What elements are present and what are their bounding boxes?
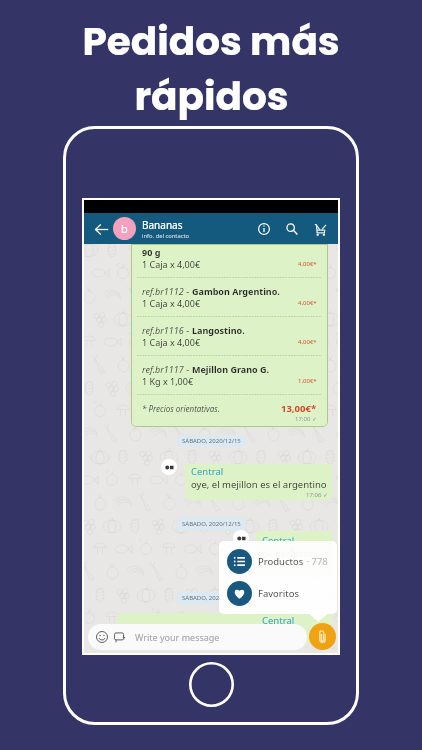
- staticText: Central: [262, 534, 295, 547]
- staticText: 17:06 ✓: [306, 491, 328, 499]
- button[interactable]: Home: [189, 662, 234, 707]
- staticText: -: [184, 285, 192, 297]
- button[interactable]: Productos: [227, 549, 337, 574]
- staticText: 1 Caja x 4,00€: [142, 297, 201, 309]
- staticText: 13,00€*: [281, 402, 317, 415]
- staticText: ref.br1116: [142, 324, 184, 336]
- button[interactable]: Info: [252, 217, 276, 241]
- staticText: Write your message: [135, 631, 220, 643]
- staticText: Pedidos más: [82, 14, 340, 69]
- staticText: 1 Kg x 1,00€: [142, 375, 194, 387]
- staticText: Bananas: [142, 218, 183, 232]
- staticText: -: [184, 324, 192, 336]
- button[interactable]: Central: [185, 464, 332, 500]
- button[interactable]: Search: [280, 217, 304, 241]
- staticText: -: [184, 363, 192, 375]
- staticText: Central: [191, 465, 224, 478]
- button[interactable]: Back: [90, 218, 112, 240]
- button[interactable]: Favoritos: [227, 581, 337, 606]
- staticText: SÁBADO, 2020/12/15: [182, 437, 241, 445]
- staticText: 4,00€*: [298, 260, 317, 268]
- staticText: rápidos: [134, 69, 289, 124]
- staticText: Langostino.: [192, 324, 245, 336]
- staticText: oye, el mejillon es el argentino: [191, 478, 327, 491]
- button[interactable]: Cart: [308, 217, 332, 241]
- staticText: 4,00€*: [298, 338, 317, 346]
- staticText: 17:20 ✓: [311, 560, 333, 568]
- staticText: SÁBADO, 2020/12/15: [182, 594, 241, 602]
- button[interactable]: Bananas: [142, 218, 190, 240]
- staticText: ok perfecto: [262, 547, 313, 560]
- staticText: 1 Caja x 4,00€: [142, 258, 201, 270]
- staticText: SÁBADO, 2020/12/15: [182, 520, 241, 528]
- staticText: 90 g: [142, 246, 161, 258]
- staticText: * Precios orientativas.: [142, 403, 220, 414]
- staticText: Mejillon Grano G.: [192, 363, 270, 375]
- staticText: 1 Caja x 4,00€: [142, 336, 201, 348]
- button[interactable]: Contact avatar: [113, 217, 136, 240]
- staticText: 1,00€*: [298, 377, 317, 385]
- staticText: Central: [262, 614, 295, 627]
- staticText: Favoritos: [258, 587, 299, 600]
- staticText: ref.br1117: [142, 363, 184, 375]
- staticText: 17:00 ✓: [295, 415, 317, 423]
- button[interactable]: Attach file: [309, 623, 336, 650]
- staticText: Productos: [258, 555, 304, 568]
- button[interactable]: 90 g: [131, 244, 328, 427]
- staticText: · 778: [304, 555, 328, 568]
- button[interactable]: Write your message: [88, 624, 307, 650]
- staticText: info. del contacto: [142, 232, 190, 240]
- staticText: b: [121, 221, 128, 236]
- staticText: Gambon Argentino.: [192, 285, 280, 297]
- staticText: 4,00€*: [298, 299, 317, 307]
- staticText: ref.br1112: [142, 285, 184, 297]
